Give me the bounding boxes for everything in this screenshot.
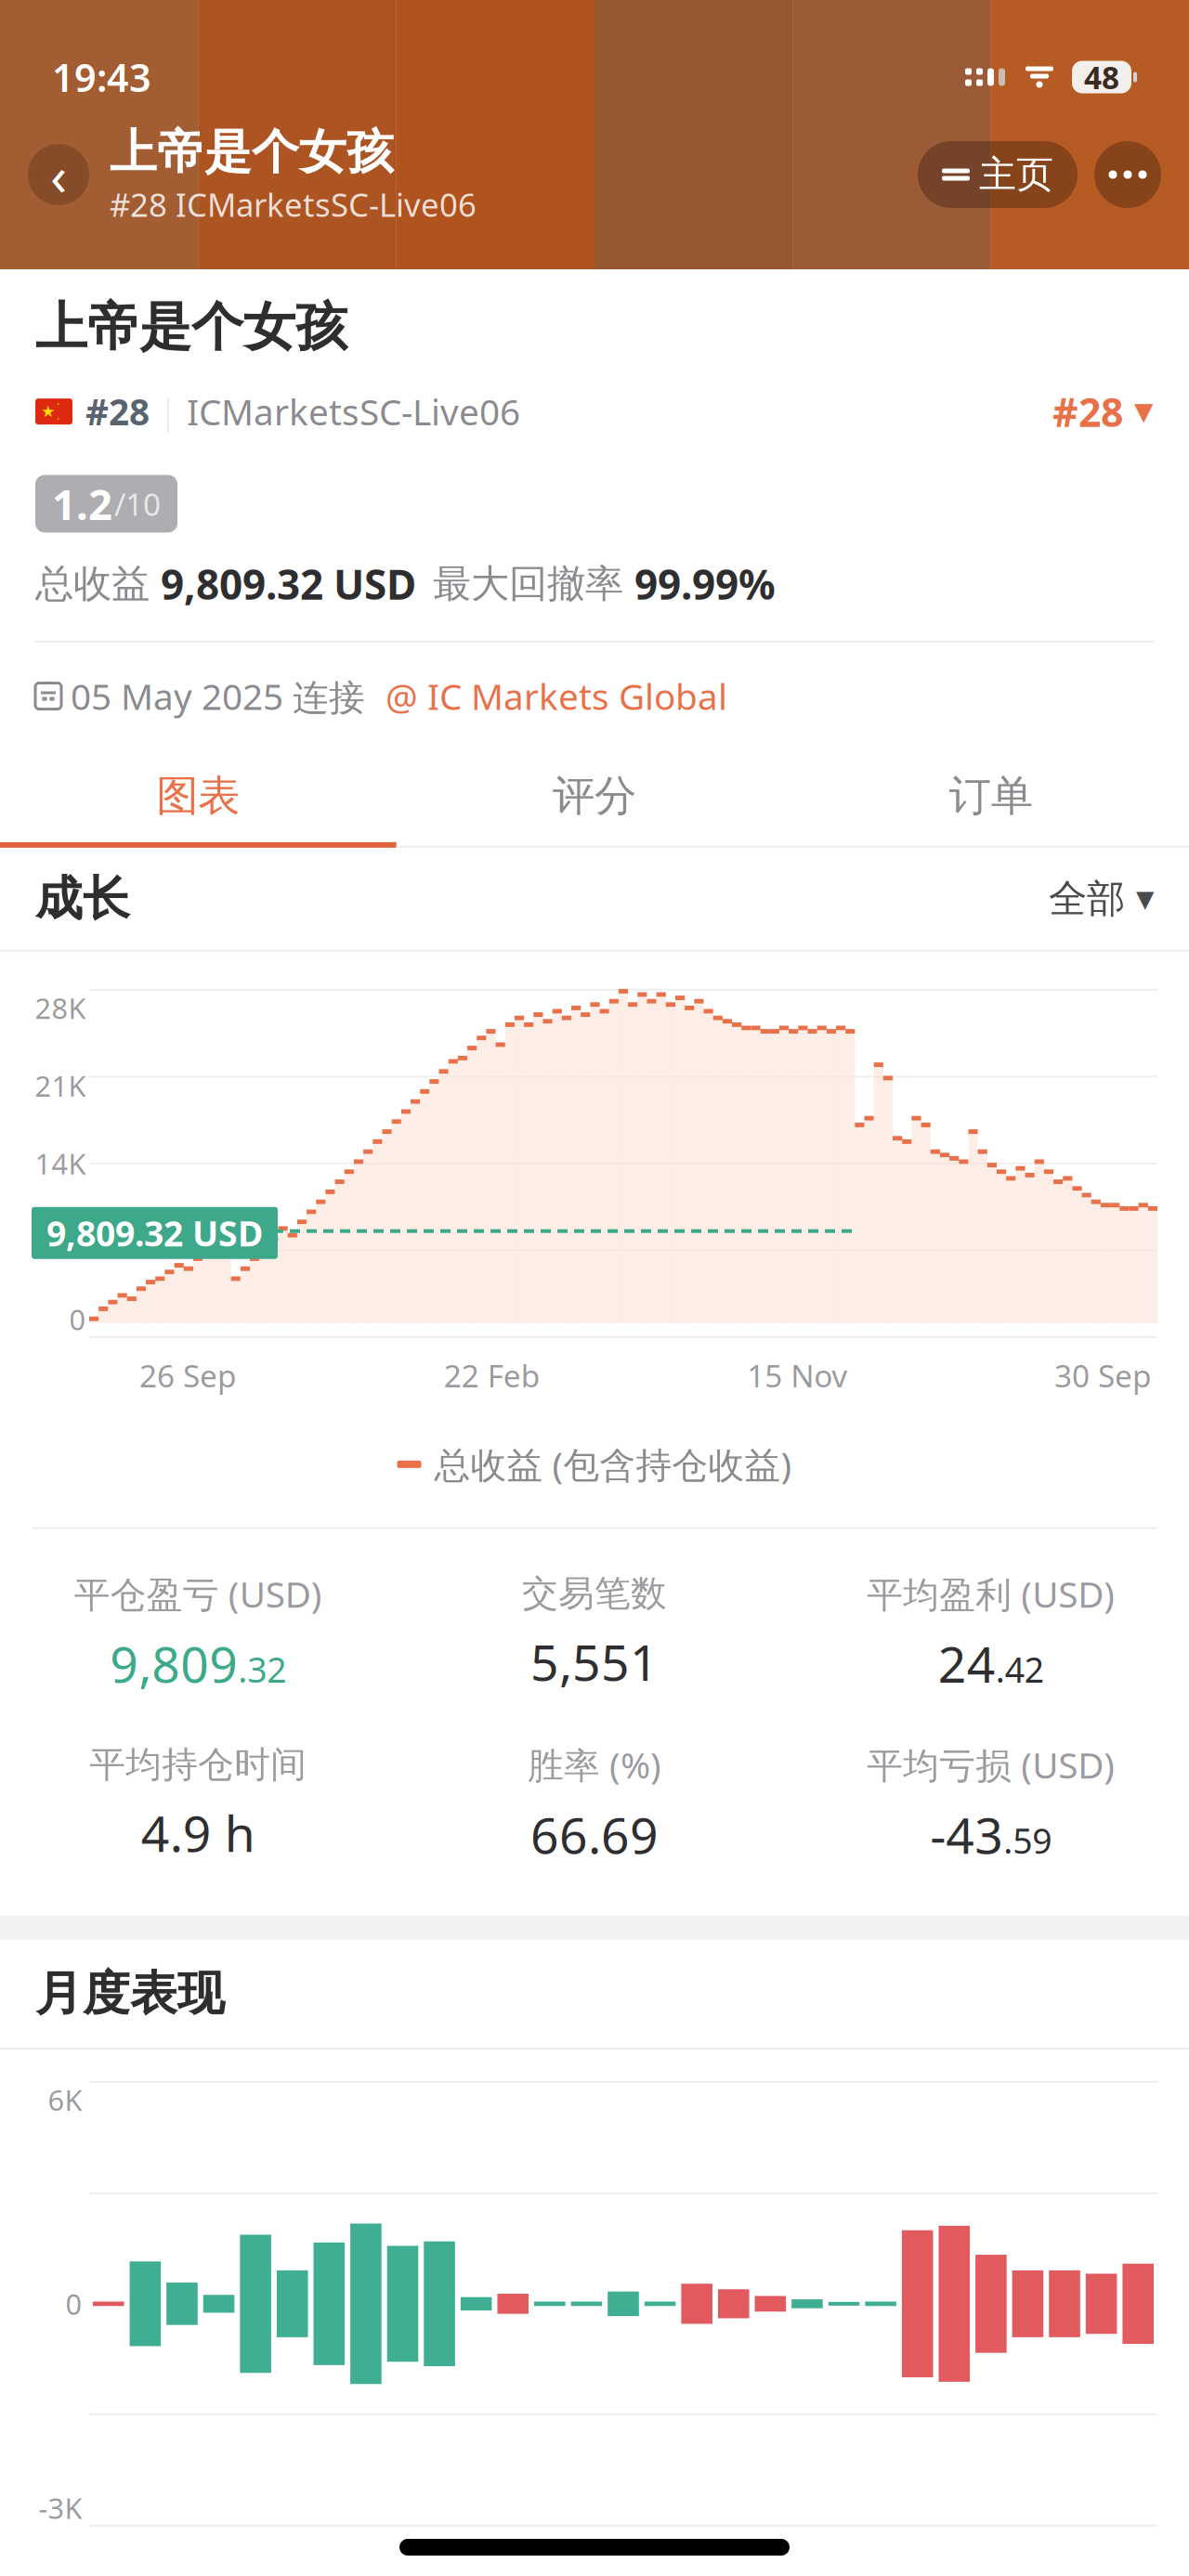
staticText: 0 (65, 2285, 82, 2323)
staticText: ▼ (1134, 397, 1154, 426)
staticText: · (57, 411, 59, 426)
button[interactable]: 更多 (1094, 141, 1161, 208)
staticText: .32 (238, 1646, 286, 1692)
staticText: 99.99% (634, 557, 776, 611)
staticText: 月度表现 (35, 1965, 225, 2022)
staticText: 9,809.32 USD (161, 557, 416, 611)
staticText: 22 Feb (444, 1355, 540, 1396)
staticText: ★ (41, 402, 56, 421)
staticText: 最大回撤率 (433, 560, 623, 607)
staticText: #28 (85, 388, 150, 435)
staticText: #28 ICMarketsSC-Live06 (110, 183, 477, 226)
staticText: 30 Sep (1054, 1355, 1152, 1396)
staticText: 图表 (156, 770, 240, 822)
staticText: 总收益 (包含持仓收益) (434, 1440, 792, 1488)
staticText: ‹ (50, 138, 67, 211)
staticText: 主页 (979, 152, 1053, 197)
staticText: -43 (930, 1802, 1003, 1867)
staticText: 1.2 (52, 476, 112, 532)
button[interactable]: #28 (1052, 380, 1154, 443)
button[interactable]: 评分 (396, 750, 793, 848)
staticText: 全部 (1049, 875, 1125, 922)
button[interactable]: 订单 (793, 750, 1189, 848)
staticText: 平均盈利 (USD) (867, 1570, 1115, 1617)
staticText: 21K (35, 1067, 86, 1105)
staticText: .59 (1003, 1817, 1052, 1863)
button[interactable]: 主页 (918, 141, 1078, 208)
staticText: 成长 (35, 870, 130, 928)
button[interactable]: 图表 (0, 750, 396, 848)
staticText: 9,809 (110, 1631, 238, 1696)
staticText: | (159, 389, 177, 434)
staticText: /10 (114, 483, 161, 524)
staticText: 9,809.32 USD (46, 1210, 263, 1256)
staticText: 6K (48, 2081, 82, 2119)
staticText: 4.9 h (141, 1800, 255, 1866)
staticText: 平仓盈亏 (USD) (74, 1570, 322, 1617)
staticText: 订单 (949, 770, 1033, 822)
staticText: 15 Nov (747, 1355, 847, 1396)
staticText: ▼ (1136, 885, 1154, 912)
staticText: 48 (1084, 57, 1119, 98)
staticText: ICMarketsSC-Live06 (187, 388, 520, 435)
staticText: 0 (69, 1300, 86, 1338)
staticText: 平均持仓时间 (89, 1743, 307, 1787)
staticText: 28K (35, 989, 86, 1027)
staticText: 05 May 2025 连接 (71, 672, 365, 720)
staticText: · (57, 397, 59, 411)
staticText: 19:43 (52, 52, 151, 103)
staticText: -3K (39, 2489, 82, 2527)
staticText: .42 (996, 1646, 1044, 1692)
staticText: 平均亏损 (USD) (867, 1741, 1115, 1789)
staticText: 24 (938, 1631, 996, 1696)
staticText: 胜率 (%) (528, 1741, 661, 1789)
button[interactable]: 全部 (1049, 868, 1154, 930)
staticText: 交易笔数 (522, 1572, 667, 1616)
staticText: 26 Sep (139, 1355, 237, 1396)
staticText: 14K (35, 1145, 86, 1182)
staticText: 评分 (553, 770, 636, 822)
staticText: @ IC Markets Global (385, 672, 727, 720)
staticText: 上帝是个女孩 (35, 295, 347, 359)
button[interactable]: 返回 (28, 138, 89, 211)
staticText: 5,551 (530, 1629, 659, 1694)
button[interactable]: @ IC Markets Global (385, 667, 727, 725)
staticText: 66.69 (530, 1802, 659, 1867)
staticText: 7K (52, 1222, 86, 1260)
staticText: 上帝是个女孩 (110, 123, 394, 181)
staticText: 总收益 (35, 560, 150, 607)
staticText: #28 (1052, 385, 1123, 438)
